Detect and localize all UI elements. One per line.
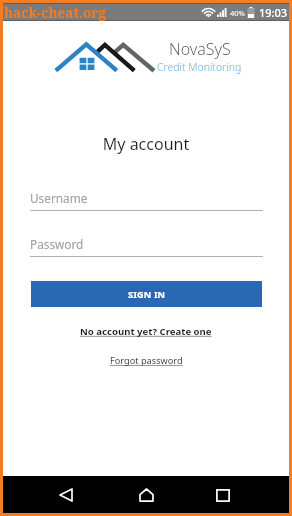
staticText: Forgot password: [110, 354, 183, 367]
staticText: Username: [30, 190, 88, 206]
staticText: NovaSyS: [169, 38, 231, 60]
staticText: 40%: [230, 8, 245, 18]
button[interactable]: Username: [30, 190, 263, 211]
staticText: SIGN IN: [128, 288, 166, 301]
staticText: 19:03: [259, 5, 288, 20]
staticText: hack-cheat.org: [4, 3, 106, 21]
button[interactable]: SIGN IN: [31, 281, 262, 307]
staticText: No account yet? Create one: [80, 325, 212, 338]
button[interactable]: Back: [52, 481, 80, 509]
staticText: Password: [30, 236, 84, 252]
button[interactable]: Password: [30, 236, 263, 257]
button[interactable]: Forgot password: [3, 352, 289, 368]
staticText: Credit Monitoring: [157, 60, 242, 74]
staticText: My account: [3, 133, 289, 155]
button[interactable]: Home: [132, 481, 160, 509]
button[interactable]: No account yet? Create one: [3, 322, 289, 340]
button[interactable]: Recent apps: [209, 481, 237, 509]
